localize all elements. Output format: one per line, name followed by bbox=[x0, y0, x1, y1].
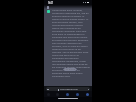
staticText: chat.openai.com bbox=[60, 88, 78, 91]
button[interactable]: Regenerate bbox=[63, 68, 77, 71]
button[interactable]: New tab bbox=[62, 91, 72, 97]
staticText: Regenerate bbox=[64, 68, 76, 71]
button[interactable]: Menu bbox=[82, 91, 92, 97]
button[interactable]: Tabs bbox=[72, 91, 82, 97]
staticText: Lorem ipsum dolor sit amet, consectetur … bbox=[52, 9, 90, 78]
button[interactable]: Home bbox=[44, 91, 53, 97]
staticText: 9:41 bbox=[48, 1, 54, 5]
button[interactable]: Address bar bbox=[46, 87, 90, 91]
button[interactable]: Back bbox=[53, 91, 62, 97]
